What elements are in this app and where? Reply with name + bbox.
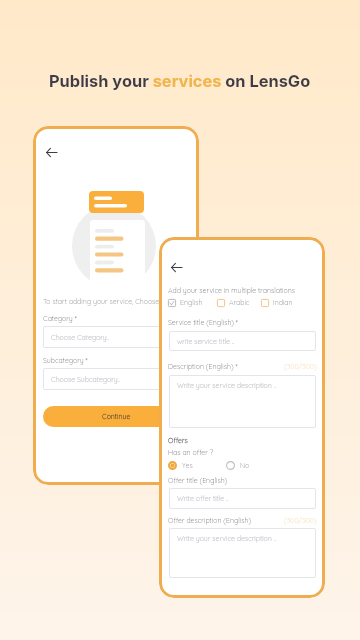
button[interactable]: Arabic [217, 298, 250, 307]
staticText: Offer title (English) [168, 476, 228, 485]
staticText: Choose Subcategory.. [51, 375, 120, 384]
button[interactable]: Yes [168, 461, 193, 470]
staticText: write service title .. [177, 337, 235, 346]
button[interactable]: Back [42, 144, 60, 160]
button[interactable]: Choose Category.. [43, 326, 189, 348]
staticText: To start adding your service, Choose: [43, 297, 161, 306]
button[interactable]: Indian [261, 298, 293, 307]
staticText: Write offer title .. [177, 494, 229, 503]
staticText: (300/300) [284, 362, 317, 371]
staticText: (300/300) [284, 516, 317, 525]
staticText: Write your service description .. [177, 534, 276, 543]
button[interactable]: Back [167, 259, 185, 275]
staticText: Choose Category.. [51, 333, 109, 342]
staticText: English [180, 298, 203, 307]
staticText: Yes [182, 461, 193, 470]
staticText: Write your service description .. [177, 381, 276, 390]
button[interactable]: No [226, 461, 250, 470]
button[interactable]: English [168, 298, 203, 307]
button[interactable]: Choose Subcategory.. [43, 368, 189, 390]
staticText: Service title (English) * [168, 318, 238, 327]
staticText: Subcategory * [43, 356, 88, 365]
staticText: Indian [273, 298, 293, 307]
button[interactable]: Write your service description .. [169, 375, 316, 428]
staticText: Publish your services on LensGo [49, 71, 311, 91]
staticText: Offer description (English) [168, 516, 252, 525]
staticText: Offers [168, 436, 188, 445]
button[interactable]: Write offer title .. [169, 488, 316, 509]
staticText: Description (English) * [168, 362, 238, 371]
button[interactable]: Continue [43, 406, 189, 427]
button[interactable]: write service title .. [169, 331, 316, 351]
staticText: Category * [43, 314, 77, 323]
staticText: Has an offer ? [168, 448, 213, 457]
button[interactable]: Write your service description .. [169, 528, 316, 578]
staticText: No [240, 461, 250, 470]
staticText: Arabic [229, 298, 250, 307]
staticText: Continue [102, 412, 131, 421]
staticText: Add your service in multiple translation… [168, 286, 296, 295]
